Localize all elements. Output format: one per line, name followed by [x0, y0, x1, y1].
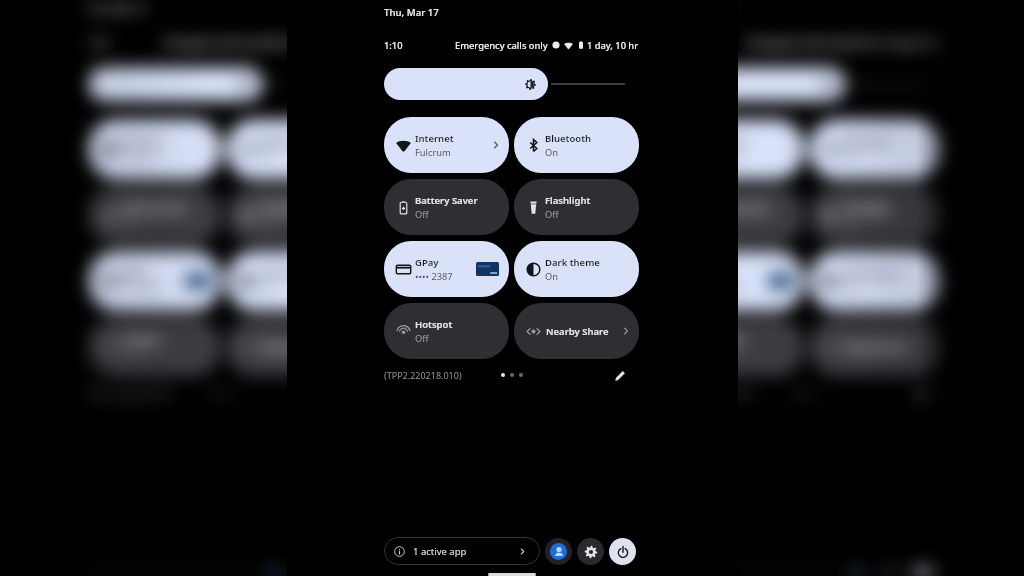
- staticText: Emergency calls only: [455, 39, 548, 52]
- staticText: Hotspot: [121, 333, 161, 347]
- staticText: On: [545, 146, 559, 159]
- staticText: 1 day, 10 hr: [587, 39, 639, 52]
- button[interactable]: Brightness: [671, 67, 845, 101]
- button[interactable]: Battery Saver: [384, 179, 509, 235]
- staticText: Nearby Share: [260, 340, 327, 354]
- button[interactable]: Internet: [671, 119, 804, 179]
- button[interactable]: Hotspot: [671, 317, 804, 377]
- staticText: Internet: [415, 132, 454, 145]
- staticText: (TPP2.220218.010): [384, 369, 462, 381]
- staticText: Emergency calls only: [747, 36, 845, 50]
- button[interactable]: Dark theme: [514, 241, 639, 297]
- button[interactable]: Nearby Share: [809, 317, 942, 377]
- staticText: On: [842, 150, 857, 164]
- staticText: Emergency calls only: [164, 36, 262, 50]
- staticText: On: [842, 282, 857, 296]
- staticText: On: [259, 282, 274, 296]
- button[interactable]: Nearby Share: [514, 303, 639, 359]
- staticText: On: [259, 150, 274, 164]
- button[interactable]: GPay: [88, 251, 221, 311]
- staticText: Off: [259, 216, 274, 230]
- staticText: Off: [415, 332, 429, 345]
- staticText: Dark theme: [259, 267, 318, 281]
- staticText: 1 active app: [413, 545, 467, 558]
- staticText: •••• 2387: [121, 282, 161, 296]
- staticText: Battery Saver: [415, 194, 478, 207]
- button[interactable]: Edit tiles: [614, 369, 627, 382]
- button[interactable]: Flashlight: [514, 179, 639, 235]
- button[interactable]: Dark theme: [226, 251, 359, 311]
- staticText: Bluetooth: [545, 132, 592, 145]
- button[interactable]: Power: [910, 567, 939, 576]
- staticText: Off: [121, 216, 136, 230]
- staticText: Thu, Mar 17: [88, 1, 147, 15]
- staticText: Flashlight: [259, 201, 308, 215]
- button[interactable]: Flashlight: [226, 185, 359, 245]
- staticText: Off: [121, 348, 136, 362]
- button[interactable]: Dark theme: [809, 251, 942, 311]
- button[interactable]: 1 active app: [384, 537, 540, 565]
- button[interactable]: Hotspot: [384, 303, 509, 359]
- button[interactable]: Account: [259, 567, 288, 576]
- button[interactable]: Hotspot: [88, 317, 221, 377]
- staticText: Dark theme: [545, 256, 600, 269]
- staticText: •••• 2387: [704, 282, 744, 296]
- button[interactable]: Power: [609, 538, 636, 565]
- staticText: Flashlight: [545, 194, 591, 207]
- staticText: Bluetooth: [259, 135, 309, 149]
- button[interactable]: Bluetooth: [226, 119, 359, 179]
- button[interactable]: Account: [545, 538, 572, 565]
- staticText: Internet: [121, 135, 163, 149]
- staticText: Nearby Share: [546, 325, 609, 338]
- button[interactable]: Settings: [577, 538, 604, 565]
- staticText: Nearby Share: [843, 340, 910, 354]
- button[interactable]: Bluetooth: [514, 117, 639, 173]
- staticText: 1:10: [384, 39, 403, 52]
- button[interactable]: Brightness: [88, 67, 262, 101]
- staticText: Off: [545, 208, 559, 221]
- staticText: Battery Saver: [121, 201, 188, 215]
- staticText: Thu, Mar 17: [384, 6, 439, 19]
- button[interactable]: Battery Saver: [671, 185, 804, 245]
- button[interactable]: GPay: [384, 241, 509, 297]
- staticText: Fulcrum: [121, 150, 159, 164]
- button[interactable]: Battery Saver: [88, 185, 221, 245]
- button[interactable]: Brightness: [384, 68, 548, 100]
- button[interactable]: Flashlight: [809, 185, 942, 245]
- staticText: Internet: [704, 135, 746, 149]
- staticText: 1 day, 10 hr: [887, 36, 942, 50]
- staticText: Off: [842, 216, 857, 230]
- staticText: GPay: [415, 256, 439, 269]
- staticText: On: [545, 270, 559, 283]
- button[interactable]: Internet: [384, 117, 509, 173]
- button[interactable]: Nearby Share: [226, 317, 359, 377]
- button[interactable]: Bluetooth: [809, 119, 942, 179]
- staticText: Flashlight: [842, 201, 891, 215]
- button[interactable]: Account: [842, 567, 871, 576]
- staticText: GPay: [121, 267, 147, 281]
- staticText: Battery Saver: [704, 201, 771, 215]
- staticText: Fulcrum: [415, 146, 451, 159]
- staticText: Hotspot: [415, 318, 453, 331]
- staticText: (TPP2.220218.010): [671, 387, 754, 400]
- button[interactable]: Internet: [88, 119, 221, 179]
- button[interactable]: GPay: [671, 251, 804, 311]
- staticText: •••• 2387: [415, 270, 453, 283]
